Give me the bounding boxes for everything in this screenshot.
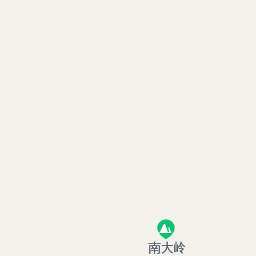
staticText: 南大岭 (148, 240, 186, 256)
button[interactable]: 南大岭 scenic area marker (148, 217, 185, 240)
staticText: 南大岭 (148, 240, 186, 256)
button[interactable]: 南大岭 (127, 240, 207, 256)
